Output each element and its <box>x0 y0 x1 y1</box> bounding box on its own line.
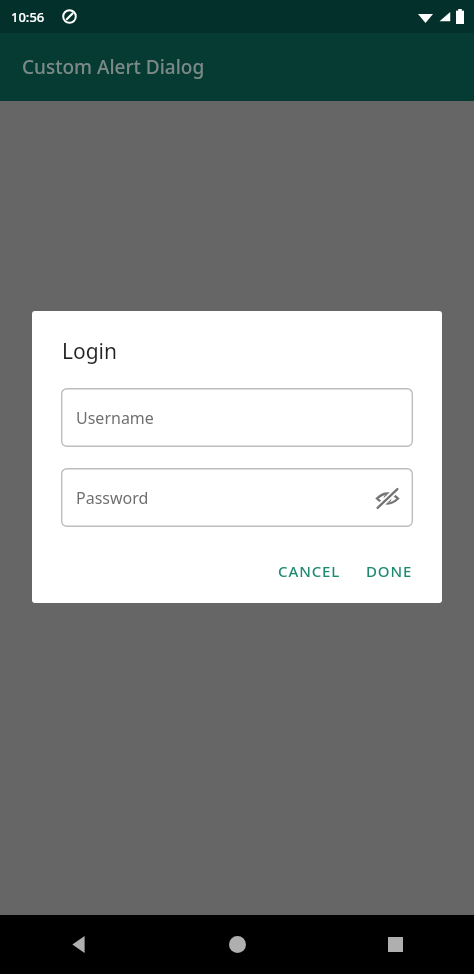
button[interactable]: Back <box>0 915 158 974</box>
button[interactable]: Password <box>61 468 413 527</box>
button[interactable]: CANCEL <box>270 552 349 590</box>
staticText: Login <box>62 337 118 366</box>
staticText: 10:56 <box>11 8 45 26</box>
button[interactable]: Username <box>61 388 413 447</box>
button[interactable]: Show password <box>370 481 404 515</box>
staticText: Custom Alert Dialog <box>22 54 205 80</box>
staticText: DONE <box>366 561 413 581</box>
button[interactable]: Home <box>158 915 316 974</box>
staticText: Password <box>76 487 149 509</box>
staticText: CANCEL <box>278 561 341 581</box>
button[interactable]: Recent apps <box>316 915 474 974</box>
staticText: Username <box>76 407 154 429</box>
button[interactable]: DONE <box>358 552 421 590</box>
